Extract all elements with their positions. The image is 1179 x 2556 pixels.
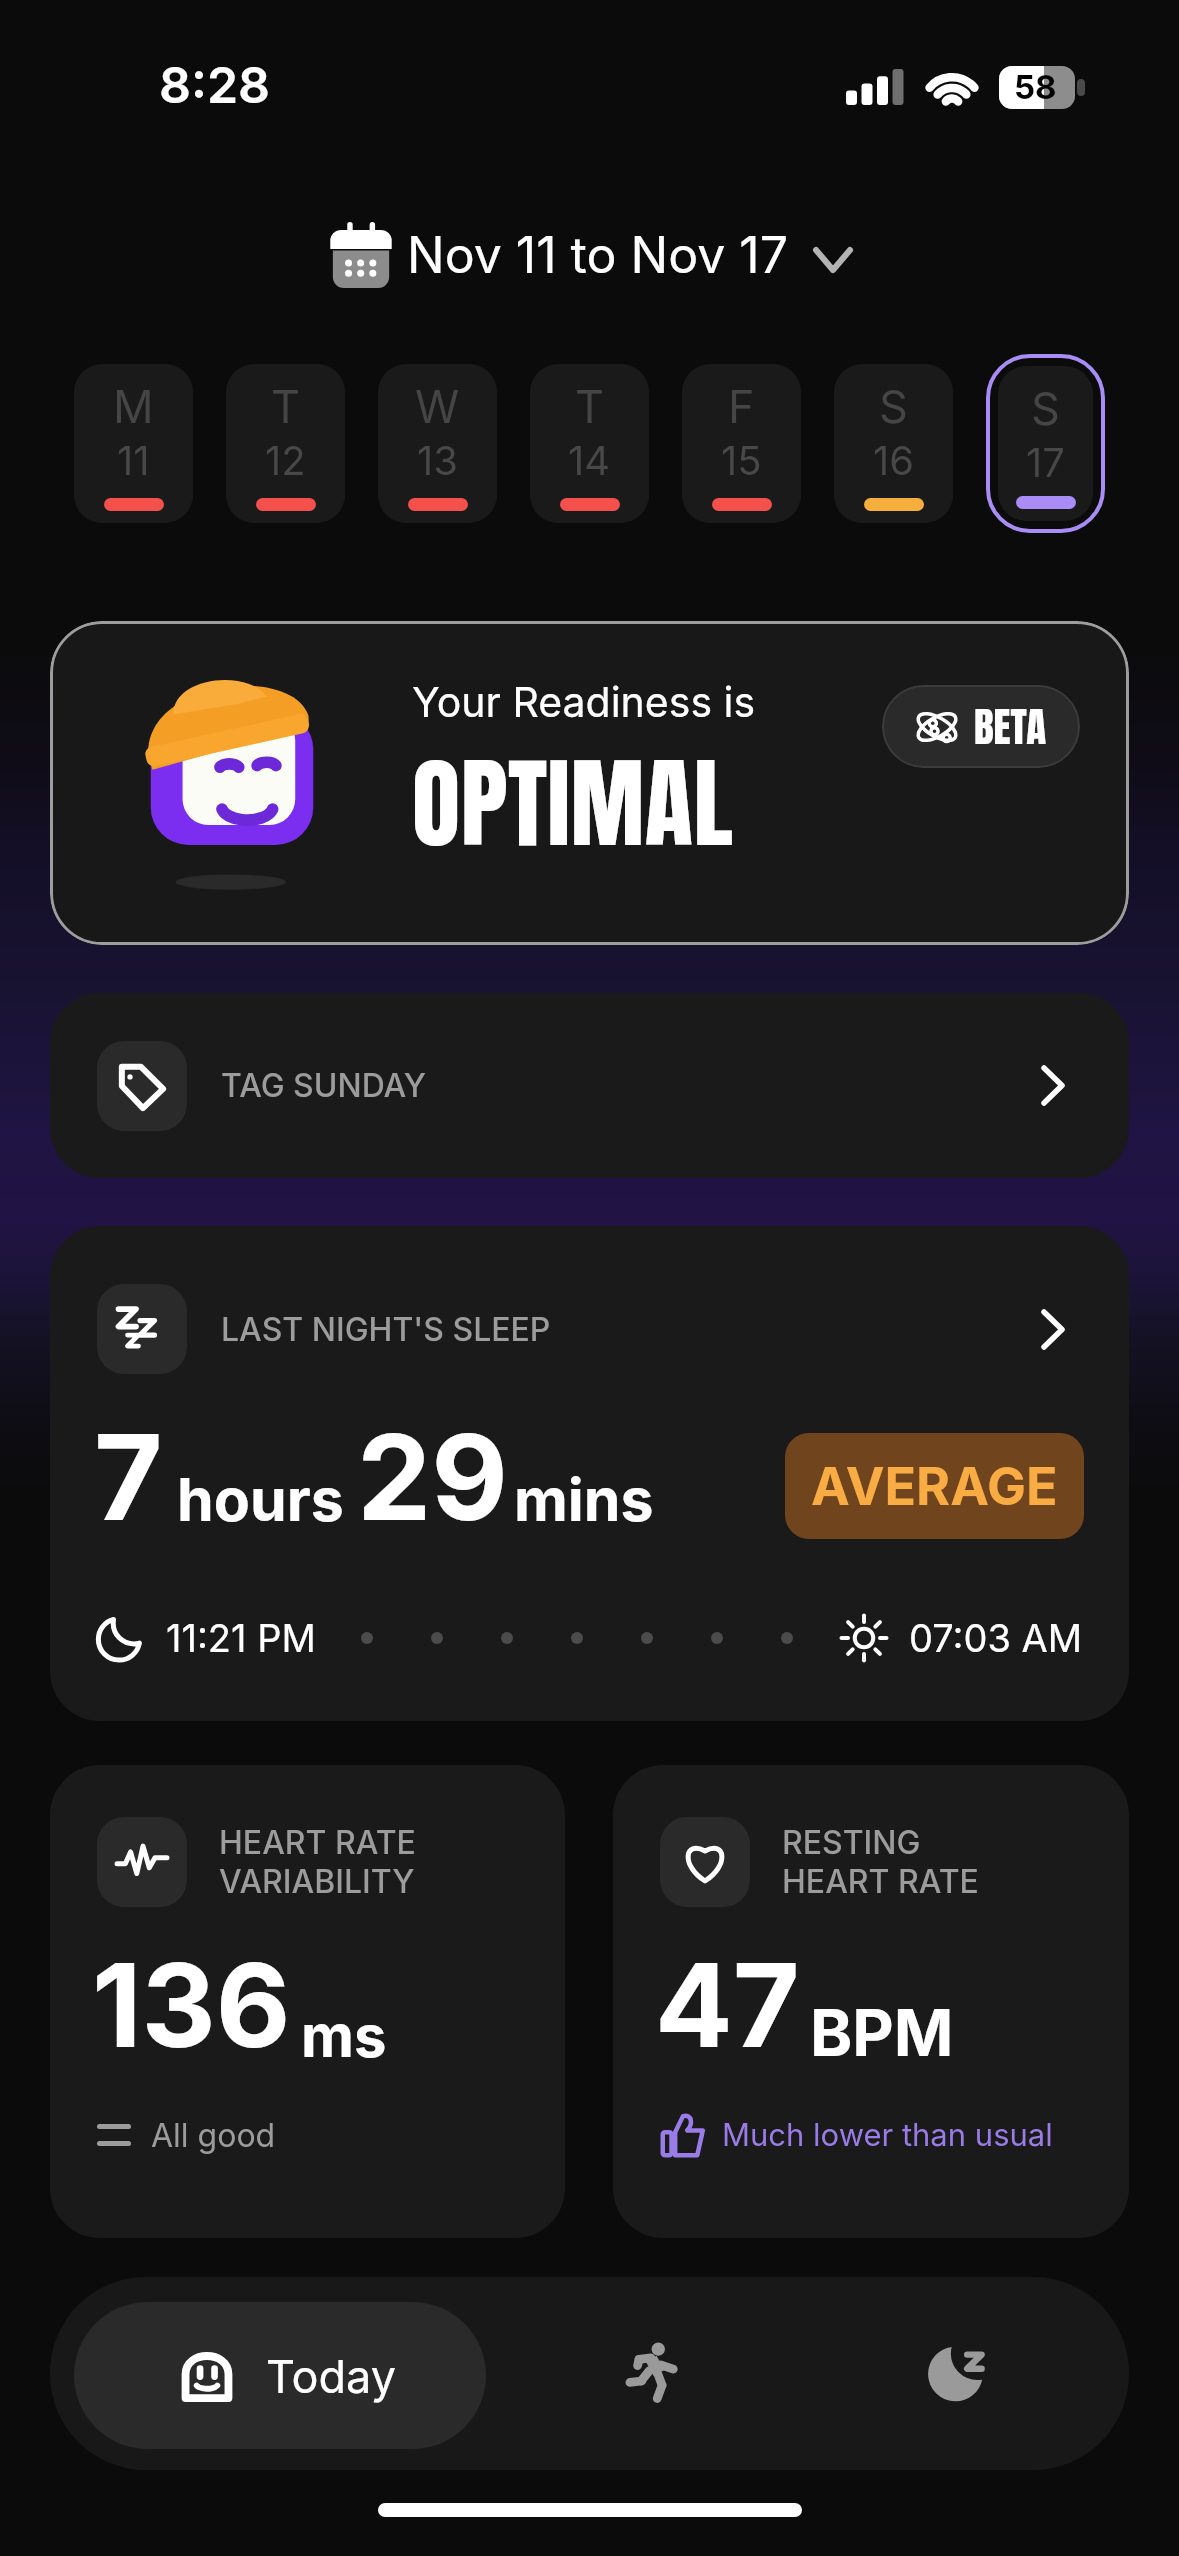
staticText: 12 <box>265 436 306 484</box>
staticText: 07:03 AM <box>909 1615 1083 1661</box>
button[interactable]: Sleep <box>840 2277 1090 2470</box>
staticText: All good <box>151 2116 276 2155</box>
button[interactable]: F <box>682 364 801 523</box>
staticText: Much lower than usual <box>722 2116 1053 2154</box>
button[interactable]: T <box>226 364 345 523</box>
button[interactable]: Nov 11 to Nov 17 <box>0 200 1179 310</box>
button[interactable]: Your Readiness is <box>50 621 1129 945</box>
staticText: 8:28 <box>159 55 271 115</box>
staticText: 7 <box>94 1406 163 1549</box>
button[interactable]: S <box>998 366 1093 521</box>
button[interactable]: TAG SUNDAY <box>50 993 1129 1178</box>
staticText: 29 <box>357 1406 508 1549</box>
staticText: T <box>271 379 301 433</box>
button[interactable]: HEART RATE VARIABILITY <box>50 1765 565 2238</box>
staticText: 14 <box>568 436 611 484</box>
staticText: 47 <box>655 1936 800 2075</box>
staticText: Today <box>266 2349 396 2403</box>
button[interactable]: Today <box>74 2302 486 2449</box>
staticText: HEART RATE VARIABILITY <box>219 1823 416 1901</box>
staticText: 13 <box>417 436 458 484</box>
button[interactable]: Activity <box>542 2277 802 2470</box>
staticText: 16 <box>873 436 915 484</box>
staticText: 11 <box>117 436 150 484</box>
staticText: 136 <box>92 1936 291 2075</box>
button[interactable]: LAST NIGHT'S SLEEP <box>50 1226 1129 1721</box>
button[interactable]: RESTING HEART RATE <box>613 1765 1129 2238</box>
button[interactable]: S <box>834 364 953 523</box>
staticText: hours <box>177 1464 344 1535</box>
staticText: Nov 11 to Nov 17 <box>407 225 788 285</box>
staticText: M <box>113 379 154 433</box>
staticText: S <box>879 379 908 433</box>
staticText: 15 <box>721 436 762 484</box>
staticText: Your Readiness is <box>412 677 756 727</box>
staticText: BPM <box>810 1994 954 2071</box>
staticText: ms <box>301 2001 387 2071</box>
staticText: AVERAGE <box>811 1455 1058 1518</box>
button[interactable]: W <box>378 364 497 523</box>
button[interactable]: BETA <box>882 685 1080 768</box>
staticText: F <box>728 379 755 433</box>
staticText: OPTIMAL <box>412 729 734 878</box>
staticText: T <box>575 379 605 433</box>
staticText: 58 <box>1014 67 1057 107</box>
staticText: mins <box>514 1464 654 1535</box>
staticText: 11:21 PM <box>166 1615 316 1661</box>
staticText: LAST NIGHT'S SLEEP <box>221 1310 551 1349</box>
staticText: 17 <box>1026 438 1065 486</box>
staticText: RESTING HEART RATE <box>782 1823 979 1901</box>
staticText: S <box>1031 381 1060 435</box>
staticText: W <box>415 379 460 433</box>
button[interactable]: M <box>74 364 193 523</box>
button[interactable]: T <box>530 364 649 523</box>
staticText: TAG SUNDAY <box>221 1066 427 1105</box>
staticText: BETA <box>974 696 1047 758</box>
